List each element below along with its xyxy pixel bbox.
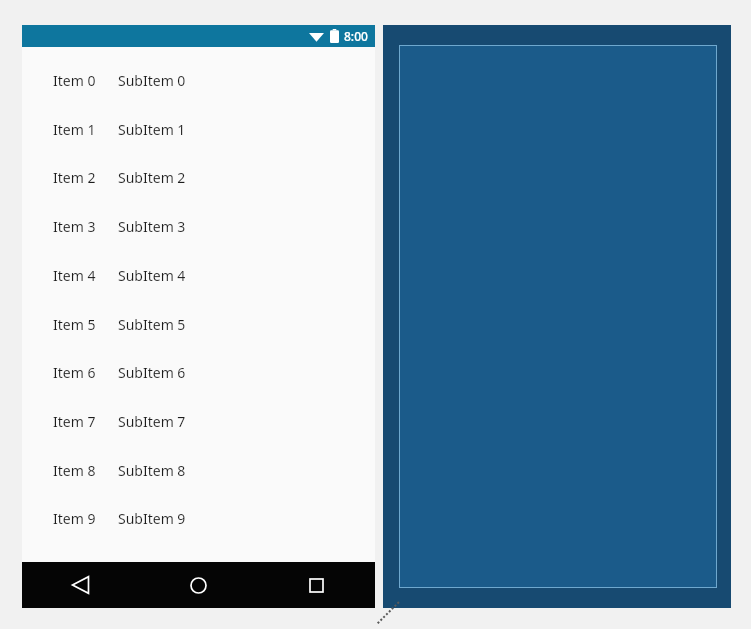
button[interactable]: Recents: [257, 562, 375, 608]
staticText: SubItem 8: [118, 461, 186, 480]
staticText: SubItem 0: [118, 71, 186, 90]
staticText: Item 3: [53, 217, 96, 236]
button[interactable]: Item 5: [22, 307, 375, 341]
button[interactable]: Item 3: [22, 209, 375, 243]
button[interactable]: Item 0: [22, 63, 375, 97]
button[interactable]: Home: [139, 562, 257, 608]
staticText: Item 1: [53, 120, 96, 139]
staticText: Item 5: [53, 315, 96, 334]
staticText: Item 8: [53, 461, 96, 480]
staticText: SubItem 6: [118, 363, 186, 382]
staticText: SubItem 5: [118, 315, 186, 334]
button[interactable]: Item 8: [22, 453, 375, 487]
button[interactable]: Preview panel: [383, 25, 731, 608]
staticText: Item 7: [53, 412, 96, 431]
button[interactable]: Item 2: [22, 160, 375, 194]
staticText: SubItem 7: [118, 412, 186, 431]
staticText: 8:00: [344, 28, 368, 44]
button[interactable]: Item 4: [22, 258, 375, 292]
staticText: Item 6: [53, 363, 96, 382]
staticText: Item 4: [53, 266, 96, 285]
staticText: SubItem 9: [118, 509, 186, 528]
staticText: Item 0: [53, 71, 96, 90]
staticText: SubItem 1: [118, 120, 186, 139]
button[interactable]: Item 1: [22, 112, 375, 146]
staticText: SubItem 4: [118, 266, 186, 285]
button[interactable]: Item 7: [22, 404, 375, 438]
staticText: SubItem 3: [118, 217, 186, 236]
staticText: Item 2: [53, 168, 96, 187]
button[interactable]: Resize: [375, 600, 401, 626]
button[interactable]: Back: [22, 562, 139, 608]
staticText: Item 9: [53, 509, 96, 528]
button[interactable]: Item 9: [22, 501, 375, 535]
staticText: SubItem 2: [118, 168, 186, 187]
button[interactable]: Item 6: [22, 355, 375, 389]
